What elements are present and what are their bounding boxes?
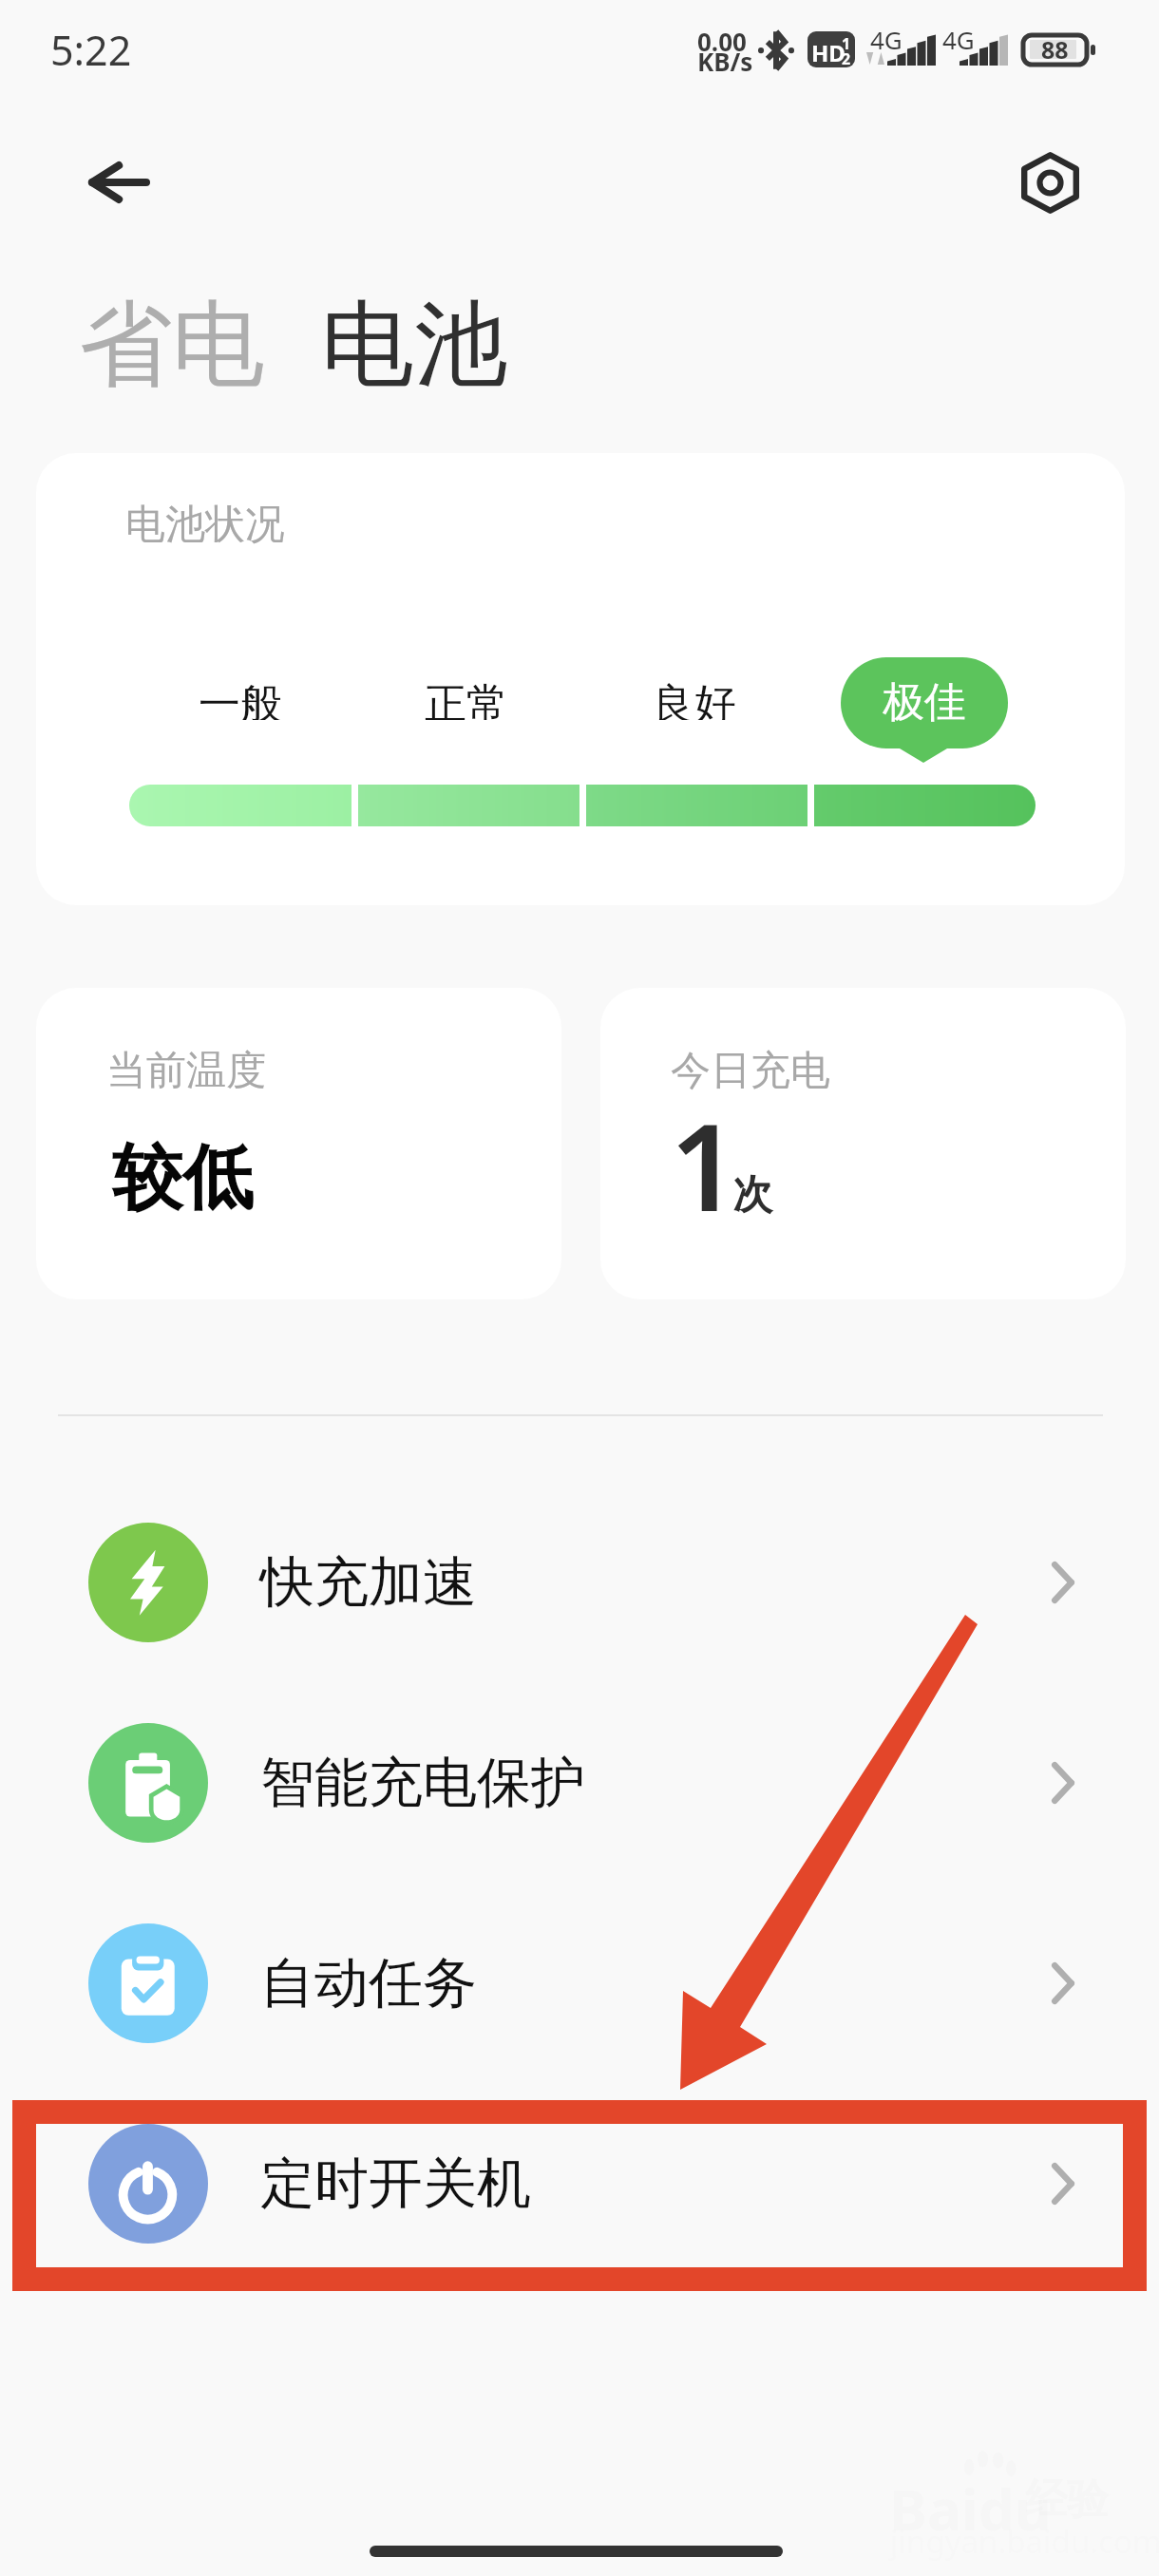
button[interactable]: 电池 bbox=[321, 287, 507, 404]
staticText: 定时开关机 bbox=[260, 2150, 531, 2218]
staticText: 正常 bbox=[425, 678, 508, 720]
staticText: 当前温度 bbox=[106, 1046, 266, 1096]
staticText: 1 bbox=[842, 33, 851, 54]
button[interactable]: Back bbox=[58, 148, 180, 217]
button[interactable]: Settings bbox=[1007, 144, 1094, 222]
button[interactable]: 快充加速 bbox=[0, 1487, 1159, 1678]
staticText: HD bbox=[811, 37, 845, 67]
staticText: 次 bbox=[732, 1170, 772, 1221]
button[interactable]: 今日充电 bbox=[600, 988, 1126, 1299]
staticText: 良好 bbox=[653, 678, 736, 720]
staticText: 自动任务 bbox=[260, 1949, 477, 2017]
button[interactable]: 自动任务 bbox=[0, 1887, 1159, 2079]
staticText: 一般 bbox=[199, 678, 282, 720]
staticText: 电池状况 bbox=[125, 500, 285, 550]
staticText: 0.00 bbox=[697, 25, 747, 58]
button[interactable]: 智能充电保护 bbox=[0, 1687, 1159, 1879]
staticText: 4G bbox=[870, 23, 902, 56]
staticText: 智能充电保护 bbox=[260, 1749, 585, 1817]
staticText: 今日充电 bbox=[671, 1046, 830, 1096]
staticText: 2 bbox=[842, 48, 851, 67]
staticText: 快充加速 bbox=[260, 1548, 477, 1617]
staticText: 88 bbox=[1041, 33, 1069, 66]
button[interactable]: 省电 bbox=[79, 287, 265, 404]
button[interactable]: 当前温度 bbox=[36, 988, 561, 1299]
button[interactable]: 定时开关机 bbox=[0, 2088, 1159, 2280]
staticText: 极佳 bbox=[883, 676, 966, 729]
staticText: 1 bbox=[670, 1082, 739, 1246]
staticText: KB/s bbox=[697, 45, 753, 78]
staticText: 5:22 bbox=[50, 22, 132, 78]
staticText: 4G bbox=[942, 23, 975, 56]
staticText: 较低 bbox=[112, 1134, 253, 1222]
